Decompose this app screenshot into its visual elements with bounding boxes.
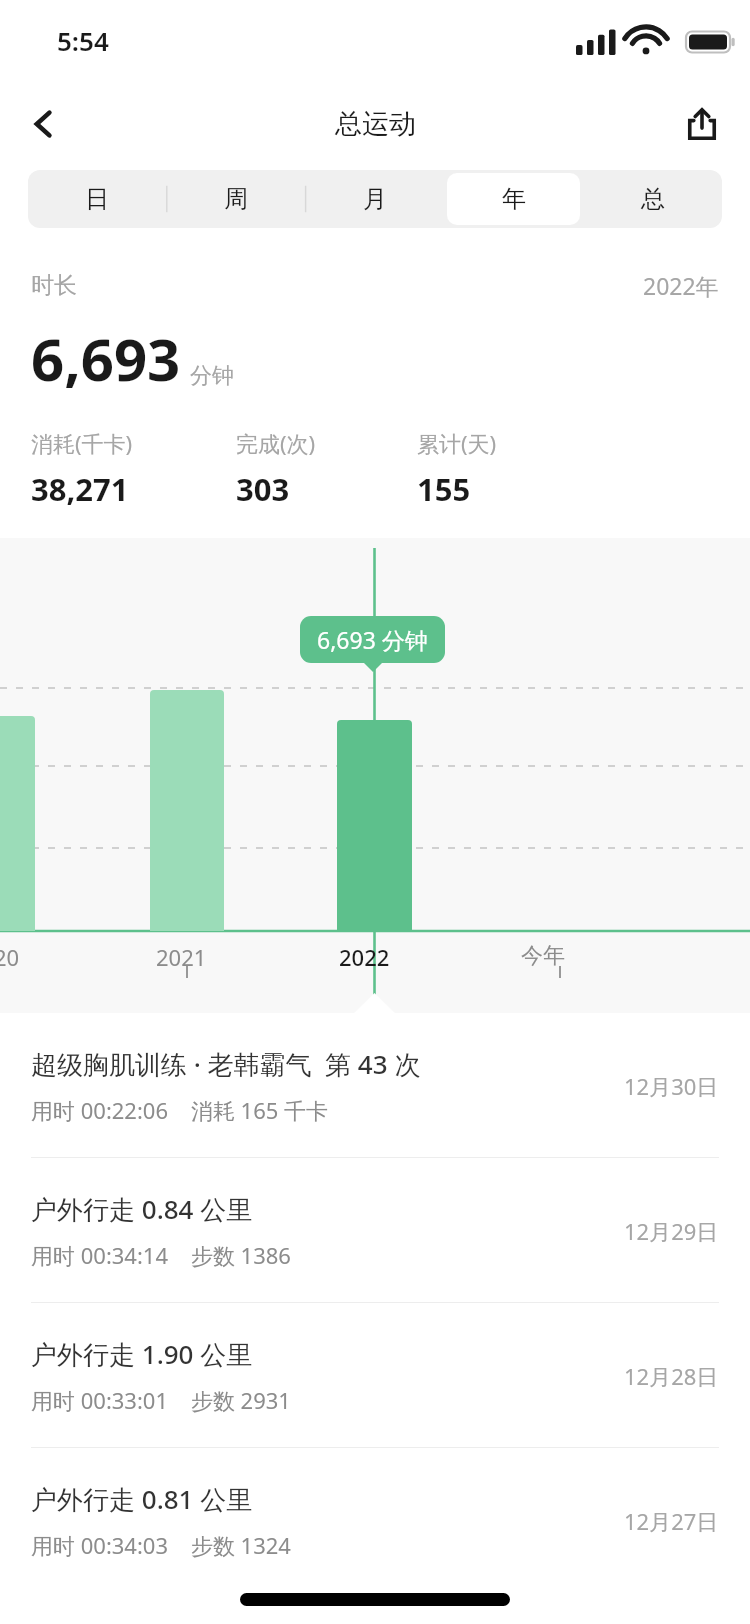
button[interactable]: 日 <box>31 173 163 225</box>
button[interactable]: 年 <box>447 173 580 225</box>
staticText: 303 <box>236 468 290 510</box>
staticText: 完成(次) <box>236 428 316 458</box>
button[interactable]: 超级胸肌训练 · 老韩霸气 第 43 次 <box>0 1013 750 1158</box>
staticText: 12月28日 <box>624 1361 719 1391</box>
staticText: 12月27日 <box>624 1506 719 1536</box>
staticText: 155 <box>417 468 471 510</box>
staticText: 5:54 <box>57 23 109 58</box>
staticText: 用时 00:22:06 消耗 165 千卡 <box>31 1095 329 1125</box>
staticText: 户外行走 0.81 公里 <box>31 1481 253 1517</box>
staticText: 用时 00:33:01 步数 2931 <box>31 1385 291 1415</box>
button[interactable]: 户外行走 0.84 公里 <box>0 1158 750 1303</box>
button[interactable]: 周 <box>169 173 302 225</box>
staticText: 用时 00:34:03 步数 1324 <box>31 1530 291 1560</box>
staticText: 周 <box>224 184 248 214</box>
staticText: 38,271 <box>31 468 129 510</box>
staticText: 时长 <box>31 271 77 300</box>
button[interactable]: 月 <box>308 173 441 225</box>
staticText: 12月29日 <box>624 1216 719 1246</box>
staticText: 12月30日 <box>624 1071 719 1101</box>
staticText: 总 <box>641 184 665 214</box>
staticText: 2021 <box>156 942 207 972</box>
staticText: 户外行走 0.84 公里 <box>31 1191 253 1227</box>
staticText: 6,693 <box>31 319 181 398</box>
staticText: 2022 <box>339 942 390 972</box>
staticText: 年 <box>502 184 526 214</box>
button[interactable]: 总 <box>586 173 719 225</box>
staticText: 6,693 分钟 <box>317 624 428 655</box>
button[interactable]: 户外行走 1.90 公里 <box>0 1303 750 1448</box>
staticText: 20 <box>0 942 20 972</box>
button[interactable]: Share <box>672 94 732 154</box>
button[interactable]: 户外行走 0.81 公里 <box>0 1448 750 1593</box>
staticText: 户外行走 1.90 公里 <box>31 1336 253 1372</box>
staticText: 超级胸肌训练 · 老韩霸气 第 43 次 <box>31 1046 421 1082</box>
staticText: 分钟 <box>190 362 234 390</box>
staticText: 用时 00:34:14 步数 1386 <box>31 1240 291 1270</box>
staticText: 日 <box>85 184 109 214</box>
staticText: 2022年 <box>643 270 719 301</box>
staticText: 月 <box>363 184 387 214</box>
button[interactable]: Back <box>14 94 74 154</box>
staticText: 总运动 <box>335 107 416 141</box>
staticText: 累计(天) <box>417 428 497 458</box>
staticText: 今年 <box>521 942 565 970</box>
staticText: 消耗(千卡) <box>31 428 133 458</box>
